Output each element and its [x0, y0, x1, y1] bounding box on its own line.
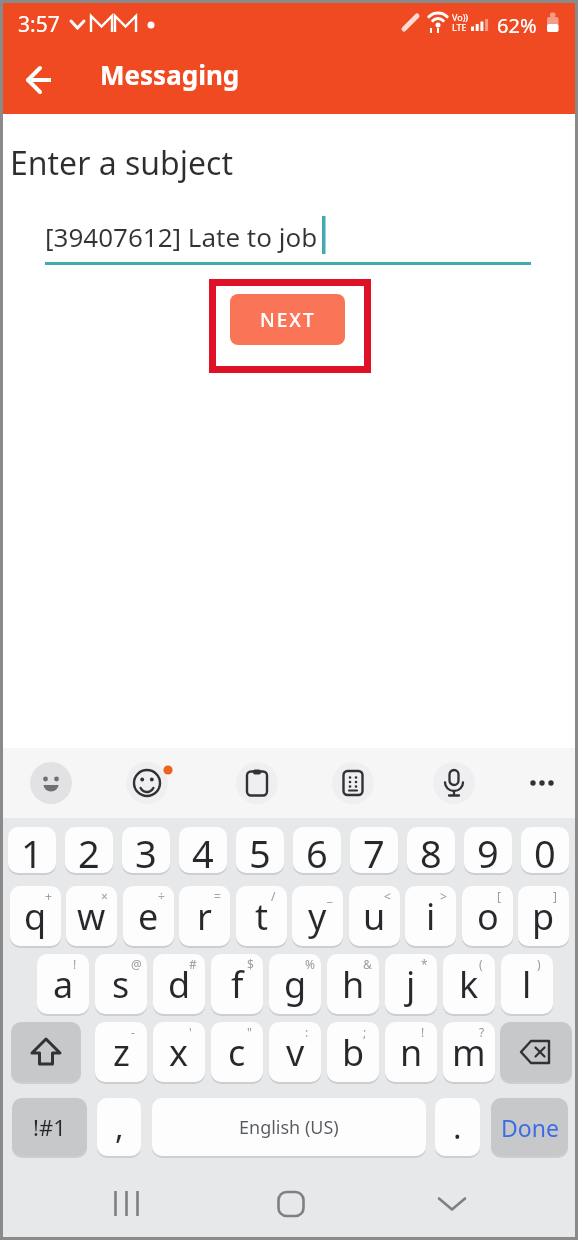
button[interactable]: h [327, 954, 379, 1014]
staticText: 0 [534, 827, 556, 873]
button[interactable]: s [95, 954, 147, 1014]
staticText: 3 [135, 827, 157, 873]
staticText: # [189, 956, 197, 972]
staticText: ! [421, 1024, 425, 1040]
staticText: ] [553, 888, 557, 904]
staticText: $ [247, 956, 254, 972]
button[interactable]: w [66, 886, 117, 946]
staticText: 3:57 [18, 10, 60, 39]
button[interactable] [126, 762, 168, 804]
staticText: h [342, 960, 365, 1009]
staticText: ' [189, 1024, 192, 1040]
button[interactable]: , [97, 1098, 141, 1156]
staticText: Messaging [100, 57, 240, 92]
button[interactable]: 2 [65, 827, 113, 873]
button[interactable]: NEXT [230, 294, 345, 345]
button[interactable]: [39407612] Late to job [45, 214, 531, 269]
button[interactable]: o [462, 886, 513, 946]
button[interactable]: d [153, 954, 205, 1014]
staticText: @ [131, 956, 142, 972]
button[interactable]: m [443, 1022, 495, 1082]
button[interactable] [16, 56, 64, 104]
button[interactable]: u [349, 886, 400, 946]
button[interactable]: f [211, 954, 263, 1014]
button[interactable]: c [211, 1022, 263, 1082]
button[interactable]: 8 [407, 827, 455, 873]
staticText: r [197, 892, 212, 941]
button[interactable] [103, 1180, 151, 1228]
staticText: s [112, 960, 130, 1009]
button[interactable]: b [327, 1022, 379, 1082]
button[interactable] [521, 762, 563, 804]
button[interactable]: k [443, 954, 495, 1014]
staticText: w [77, 892, 106, 941]
button[interactable]: q [10, 886, 61, 946]
staticText: v [286, 1028, 305, 1077]
button[interactable]: p [518, 886, 569, 946]
button[interactable] [500, 1022, 572, 1082]
staticText: ( [479, 956, 483, 972]
button[interactable]: 9 [464, 827, 512, 873]
staticText: 62% [497, 12, 537, 39]
staticText: ; [363, 1024, 367, 1040]
button[interactable]: y [292, 886, 343, 946]
button[interactable]: 4 [179, 827, 227, 873]
staticText: 2 [78, 827, 100, 873]
button[interactable]: 3 [122, 827, 170, 873]
staticText: Enter a subject [10, 141, 233, 185]
staticText: g [284, 960, 307, 1009]
button[interactable]: i [405, 886, 456, 946]
staticText: 6 [306, 827, 328, 873]
staticText: = [214, 888, 221, 904]
staticText: . [453, 1105, 462, 1149]
button[interactable]: 6 [293, 827, 341, 873]
staticText: [39407612] Late to job [45, 219, 318, 254]
staticText: i [426, 892, 436, 941]
button[interactable]: Done [491, 1098, 568, 1156]
button[interactable]: 0 [521, 827, 569, 873]
button[interactable]: English (US) [152, 1098, 426, 1156]
button[interactable] [433, 762, 475, 804]
staticText: , [115, 1105, 124, 1149]
staticText: o [477, 892, 499, 941]
staticText: l [522, 960, 532, 1009]
staticText: Done [501, 1112, 559, 1143]
button[interactable]: 7 [350, 827, 398, 873]
button[interactable] [11, 1022, 81, 1082]
button[interactable]: r [179, 886, 230, 946]
button[interactable]: e [123, 886, 174, 946]
staticText: x [169, 1028, 189, 1077]
button[interactable] [236, 762, 278, 804]
staticText: z [113, 1028, 130, 1077]
button[interactable]: n [385, 1022, 437, 1082]
staticText: ) [537, 956, 541, 972]
button[interactable] [332, 762, 374, 804]
button[interactable]: 1 [8, 827, 56, 873]
staticText: ! [73, 956, 77, 972]
staticText: t [255, 892, 268, 941]
button[interactable]: z [95, 1022, 147, 1082]
staticText: ? [479, 1024, 485, 1040]
staticText: ÷ [158, 888, 165, 904]
staticText: 7 [363, 827, 385, 873]
staticText: English (US) [239, 1115, 339, 1140]
staticText: 5 [249, 827, 271, 873]
staticText: < [384, 888, 391, 904]
button[interactable] [428, 1180, 476, 1228]
button[interactable]: t [236, 886, 287, 946]
staticText: e [138, 892, 159, 941]
staticText: m [452, 1028, 486, 1077]
staticText: q [24, 892, 47, 941]
staticText: % [305, 956, 315, 972]
button[interactable]: l [501, 954, 553, 1014]
button[interactable]: !#1 [12, 1098, 87, 1156]
button[interactable]: 5 [236, 827, 284, 873]
button[interactable]: x [153, 1022, 205, 1082]
button[interactable]: g [269, 954, 321, 1014]
button[interactable] [30, 762, 72, 804]
button[interactable]: a [37, 954, 89, 1014]
button[interactable] [267, 1180, 315, 1228]
button[interactable]: j [385, 954, 437, 1014]
button[interactable]: . [435, 1098, 480, 1156]
button[interactable]: v [269, 1022, 321, 1082]
